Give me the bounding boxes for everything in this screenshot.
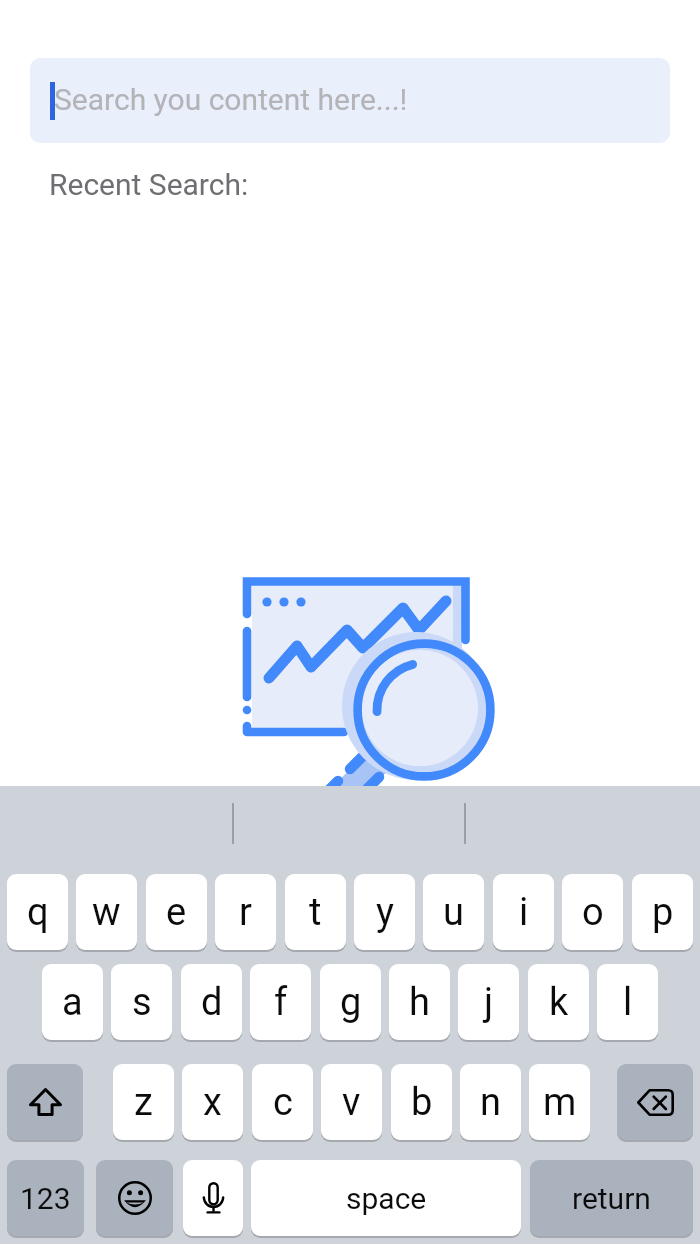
button[interactable]: f — [250, 964, 311, 1040]
button[interactable]: space — [251, 1160, 521, 1236]
button[interactable]: v — [321, 1064, 382, 1140]
staticText: Search you content here...! — [54, 82, 408, 117]
staticText: f — [274, 980, 288, 1025]
staticText: g — [340, 980, 362, 1025]
button[interactable]: u — [423, 874, 484, 950]
staticText: t — [309, 890, 322, 935]
button[interactable]: Voice input — [183, 1160, 243, 1236]
button[interactable]: b — [391, 1064, 452, 1140]
button[interactable]: i — [493, 874, 554, 950]
button[interactable]: g — [320, 964, 381, 1040]
staticText: r — [239, 890, 252, 935]
staticText: o — [582, 890, 604, 935]
staticText: a — [62, 980, 83, 1025]
staticText: j — [484, 980, 494, 1025]
button[interactable]: a — [42, 964, 103, 1040]
staticText: e — [166, 890, 187, 935]
button[interactable]: w — [76, 874, 137, 950]
button[interactable]: Shift — [7, 1064, 83, 1140]
button[interactable]: 123 — [7, 1160, 84, 1236]
staticText: space — [346, 1181, 427, 1216]
button[interactable]: t — [285, 874, 346, 950]
button[interactable]: m — [529, 1064, 590, 1140]
button[interactable]: q — [7, 874, 68, 950]
staticText: Recent Search: — [49, 167, 249, 202]
staticText: b — [411, 1080, 433, 1125]
button[interactable]: z — [113, 1064, 174, 1140]
button[interactable]: s — [111, 964, 172, 1040]
button[interactable]: Backspace — [617, 1064, 693, 1140]
button[interactable]: l — [597, 964, 658, 1040]
button[interactable]: k — [528, 964, 589, 1040]
staticText: m — [543, 1080, 577, 1125]
button[interactable]: Emoji — [96, 1160, 173, 1236]
button[interactable]: return — [530, 1160, 693, 1236]
staticText: u — [443, 890, 464, 935]
staticText: q — [27, 890, 49, 935]
staticText: x — [203, 1080, 222, 1125]
staticText: w — [92, 890, 121, 935]
staticText: 123 — [20, 1181, 71, 1216]
staticText: l — [623, 980, 633, 1025]
staticText: d — [201, 980, 223, 1025]
staticText: y — [376, 890, 394, 935]
button[interactable]: y — [354, 874, 415, 950]
button[interactable]: Search you content here...! — [30, 58, 670, 143]
staticText: return — [572, 1181, 651, 1216]
staticText: c — [273, 1080, 293, 1125]
button[interactable]: x — [182, 1064, 243, 1140]
button[interactable]: c — [252, 1064, 313, 1140]
button[interactable]: n — [460, 1064, 521, 1140]
button[interactable]: h — [389, 964, 450, 1040]
button[interactable]: p — [632, 874, 693, 950]
staticText: v — [342, 1080, 361, 1125]
staticText: z — [134, 1080, 153, 1125]
staticText: s — [132, 980, 152, 1025]
staticText: h — [409, 980, 430, 1025]
button[interactable]: r — [215, 874, 276, 950]
staticText: i — [519, 890, 529, 935]
button[interactable]: o — [562, 874, 623, 950]
button[interactable]: d — [181, 964, 242, 1040]
button[interactable]: j — [458, 964, 519, 1040]
staticText: p — [652, 890, 674, 935]
button[interactable]: e — [146, 874, 207, 950]
staticText: n — [480, 1080, 501, 1125]
staticText: k — [549, 980, 569, 1025]
